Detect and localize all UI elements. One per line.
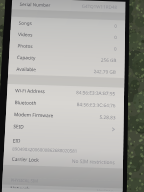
staticText: Videos (18, 31, 33, 37)
staticText: Songs (19, 20, 32, 26)
staticText: 84:56:E3:3A:B7:95 (76, 89, 116, 96)
staticText: Serial Number (19, 1, 51, 8)
staticText: EID (12, 137, 21, 144)
button[interactable]: Videos (10, 28, 125, 43)
staticText: 0 (114, 23, 117, 29)
button[interactable]: Serial Number (12, 0, 125, 13)
staticText: 5.28.83 (99, 114, 116, 120)
staticText: 0 (114, 34, 117, 40)
staticText: G4TQ1W11RD48 (82, 3, 118, 10)
button[interactable]: Capacity (9, 51, 125, 66)
button[interactable]: Modem Firmware (6, 108, 124, 124)
staticText: Network (10, 185, 30, 189)
button[interactable]: EID (4, 132, 123, 156)
staticText: 84:56:E3:3C:64:76 (77, 101, 116, 108)
staticText: Wi-Fi Address (15, 87, 45, 94)
staticText: Photos (17, 43, 33, 49)
button[interactable]: Available (8, 63, 124, 78)
staticText: Capacity (17, 54, 36, 61)
staticText: Available (16, 66, 36, 72)
staticText: Bluetooth (14, 99, 37, 106)
staticText: SEID (13, 123, 25, 129)
button[interactable]: Wi-Fi Address (7, 84, 124, 100)
staticText: Carrier Lock (12, 156, 39, 163)
button[interactable]: Songs (11, 17, 125, 32)
staticText: Modem Firmware (14, 111, 53, 118)
button[interactable]: Photos (9, 40, 125, 55)
button[interactable]: Network (2, 184, 122, 192)
staticText: 242.79 GB (94, 68, 116, 75)
button[interactable]: SEID (5, 120, 124, 136)
staticText: 0 (114, 46, 117, 51)
staticText: PHYSICAL SIM (10, 177, 38, 183)
staticText: Verizon (97, 188, 114, 191)
button[interactable]: Bluetooth (6, 96, 124, 112)
staticText: 256 GB (101, 57, 117, 63)
staticText: 89049032006000862688020581 (12, 145, 77, 154)
staticText: No SIM restrictions (72, 158, 115, 165)
button[interactable]: Carrier Lock (3, 152, 123, 169)
